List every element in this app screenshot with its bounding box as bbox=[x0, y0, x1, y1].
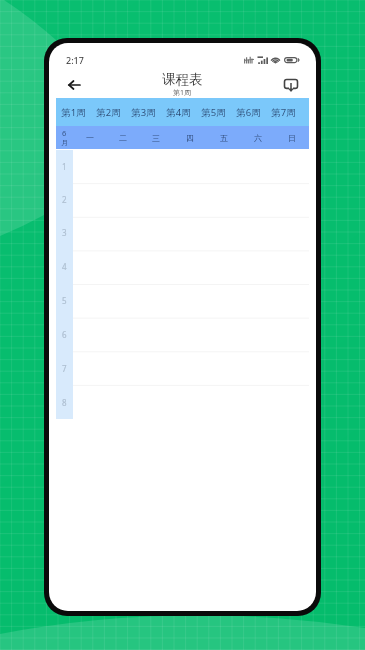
staticText: 四 bbox=[186, 133, 194, 143]
button[interactable]: 第5周 bbox=[196, 98, 231, 126]
staticText: 第1周 bbox=[173, 88, 192, 98]
button[interactable]: 五 bbox=[207, 126, 241, 149]
staticText: 2:17 bbox=[66, 54, 84, 66]
button[interactable]: 第3周 bbox=[126, 98, 161, 126]
button[interactable]: 三 bbox=[139, 126, 173, 149]
staticText: 1 bbox=[62, 161, 67, 172]
staticText: 日 bbox=[288, 133, 296, 143]
button[interactable]: 一 bbox=[73, 126, 106, 149]
button[interactable]: 日 bbox=[275, 126, 309, 149]
button[interactable]: Back bbox=[63, 74, 85, 96]
staticText: 一 bbox=[86, 133, 94, 143]
button[interactable]: 第2周 bbox=[91, 98, 126, 126]
button[interactable]: 第1周 bbox=[56, 98, 91, 126]
button[interactable]: Import schedule bbox=[280, 74, 302, 96]
staticText: 4 bbox=[62, 261, 67, 272]
staticText: 第4周 bbox=[166, 106, 191, 119]
staticText: 六 bbox=[254, 133, 262, 143]
staticText: 2 bbox=[62, 194, 67, 205]
staticText: 二 bbox=[119, 133, 127, 143]
staticText: 6 bbox=[62, 128, 67, 138]
staticText: 5 bbox=[62, 295, 67, 306]
staticText: 第2周 bbox=[96, 106, 121, 119]
staticText: 课程表 bbox=[162, 71, 203, 88]
staticText: 五 bbox=[220, 133, 228, 143]
staticText: 3 bbox=[62, 227, 67, 238]
button[interactable]: 第6周 bbox=[231, 98, 266, 126]
staticText: 7 bbox=[62, 363, 67, 374]
staticText: 第3周 bbox=[131, 106, 156, 119]
staticText: 第7周 bbox=[271, 106, 296, 119]
button[interactable]: 六 bbox=[241, 126, 275, 149]
button[interactable]: 第7周 bbox=[266, 98, 301, 126]
staticText: 月 bbox=[61, 138, 68, 147]
staticText: 三 bbox=[152, 133, 160, 143]
staticText: 第5周 bbox=[201, 106, 226, 119]
staticText: 6 bbox=[62, 329, 67, 340]
button[interactable]: 二 bbox=[106, 126, 139, 149]
staticText: 8 bbox=[62, 397, 67, 408]
staticText: 第1周 bbox=[61, 106, 86, 119]
staticText: 第6周 bbox=[236, 106, 261, 119]
button[interactable]: 第4周 bbox=[161, 98, 196, 126]
button[interactable]: 四 bbox=[173, 126, 207, 149]
